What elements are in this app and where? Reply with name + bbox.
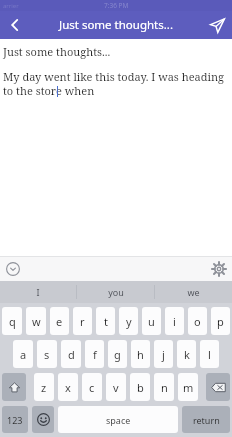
button[interactable]: y [119, 307, 138, 335]
button[interactable]: d [61, 340, 81, 368]
button[interactable]: space [58, 406, 178, 433]
staticText: f [93, 347, 97, 362]
staticText: w [32, 314, 41, 329]
button[interactable]: you [77, 281, 154, 303]
button[interactable]: Shift [2, 373, 26, 401]
button[interactable]: x [58, 373, 78, 401]
button[interactable]: m [178, 373, 198, 401]
button[interactable]: 123 [2, 406, 28, 433]
button[interactable]: Backspace [206, 373, 230, 401]
button[interactable]: Keyboard settings [210, 260, 228, 278]
staticText: c [89, 380, 95, 395]
staticText: 123 [7, 414, 23, 426]
staticText: arrier [3, 2, 19, 10]
button[interactable]: n [154, 373, 174, 401]
staticText: r [80, 314, 85, 329]
staticText: i [173, 314, 176, 329]
button[interactable]: Emoji [32, 406, 54, 433]
staticText: j [162, 347, 165, 362]
button[interactable]: I [0, 281, 76, 303]
staticText: k [184, 347, 190, 362]
staticText: return [193, 414, 220, 426]
button[interactable]: Send [202, 11, 232, 39]
staticText: t [104, 314, 108, 329]
button[interactable]: s [37, 340, 57, 368]
button[interactable]: r [73, 307, 92, 335]
staticText: you [108, 286, 124, 298]
staticText: m [183, 380, 194, 395]
button[interactable]: c [82, 373, 102, 401]
button[interactable]: Expand toolbar [4, 260, 22, 278]
staticText: y [126, 314, 132, 329]
staticText: o [194, 314, 201, 329]
staticText: Just some thoughts... [59, 17, 173, 33]
button[interactable]: j [154, 340, 173, 368]
button[interactable]: h [131, 340, 150, 368]
staticText: b [137, 380, 144, 395]
button[interactable]: z [34, 373, 54, 401]
button[interactable]: q [2, 307, 22, 335]
button[interactable]: return [182, 406, 230, 433]
button[interactable]: v [106, 373, 126, 401]
staticText: h [137, 347, 144, 362]
staticText: z [41, 380, 47, 395]
staticText: I [36, 286, 40, 298]
button[interactable]: a [13, 340, 33, 368]
staticText: we [187, 286, 200, 298]
button[interactable]: l [200, 340, 219, 368]
button[interactable]: i [165, 307, 184, 335]
staticText: d [68, 347, 75, 362]
staticText: s [44, 347, 50, 362]
staticText: u [148, 314, 155, 329]
staticText: v [113, 380, 119, 395]
button[interactable]: Back [0, 11, 30, 39]
button[interactable]: k [177, 340, 196, 368]
button[interactable]: o [188, 307, 207, 335]
staticText: q [9, 314, 16, 329]
staticText: p [217, 314, 224, 329]
staticText: x [65, 380, 71, 395]
button[interactable]: e [50, 307, 69, 335]
staticText: 7:36 PM [104, 1, 129, 10]
button[interactable]: w [26, 307, 46, 335]
button[interactable]: u [142, 307, 161, 335]
button[interactable]: t [96, 307, 115, 335]
button[interactable]: g [108, 340, 127, 368]
staticText: Just some thoughts... [3, 44, 111, 59]
staticText: My day went like this today. I was headi… [3, 69, 228, 98]
staticText: l [208, 347, 211, 362]
button[interactable]: b [130, 373, 150, 401]
staticText: a [20, 347, 27, 362]
staticText: n [161, 380, 168, 395]
staticText: space [106, 414, 131, 426]
staticText: e [56, 314, 63, 329]
button[interactable]: f [85, 340, 104, 368]
button[interactable]: p [211, 307, 230, 335]
staticText: g [114, 347, 121, 362]
button[interactable]: we [155, 281, 232, 303]
